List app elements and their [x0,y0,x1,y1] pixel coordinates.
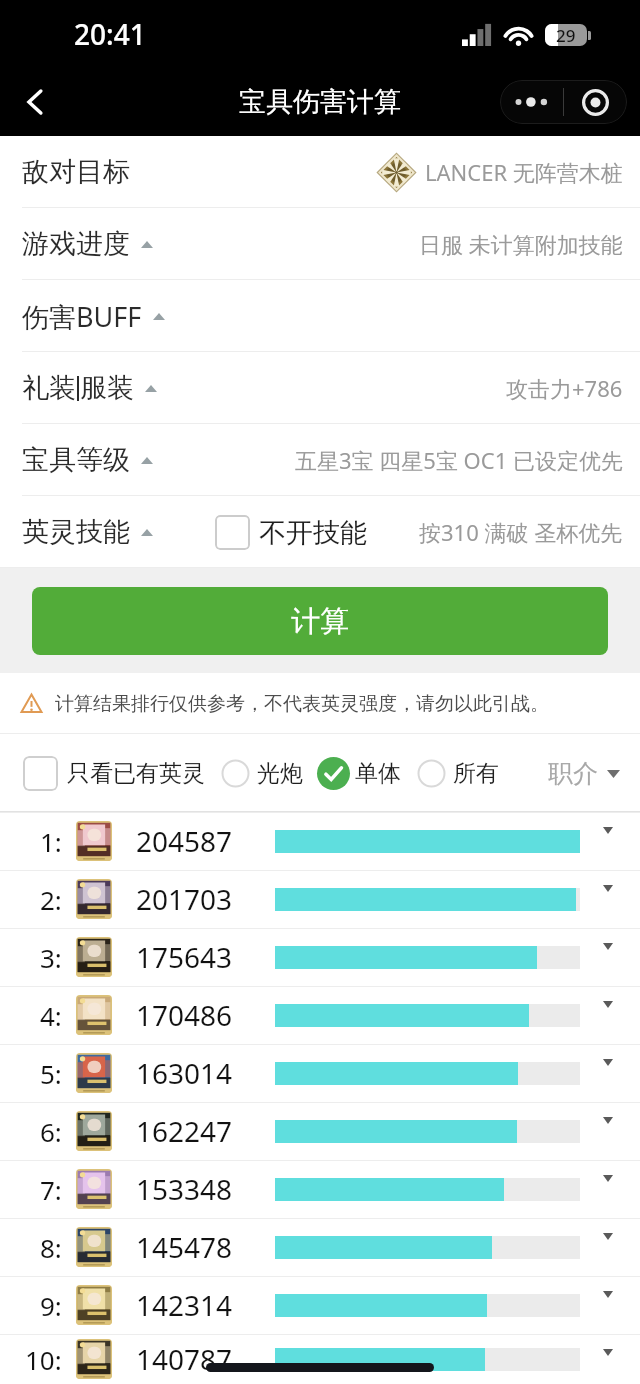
staticText: LANCER 无阵营木桩 [425,157,623,187]
staticText: 计算结果排行仅供参考，不代表英灵强度，请勿以此引战。 [55,692,549,716]
staticText: 2: [40,882,62,917]
staticText: 204587 [136,822,233,860]
staticText: 计算 [291,603,349,640]
staticText: 8: [40,1230,62,1265]
staticText: 宝具等级 [22,443,130,477]
staticText: 服装 [80,371,134,405]
staticText: 145478 [136,1228,233,1266]
staticText: 不开技能 [259,516,367,550]
staticText: 游戏进度 [22,227,130,261]
staticText: 153348 [136,1170,233,1208]
staticText: 光炮 [257,759,303,788]
staticText: 日服 未计算附加技能 [419,229,623,259]
staticText: 170486 [136,996,233,1034]
button[interactable]: Expand details [597,1227,619,1246]
staticText: 3: [40,940,62,975]
staticText: 按310 满破 圣杯优先 [419,517,623,547]
button[interactable]: 2: [0,870,640,928]
button[interactable]: 9: [0,1276,640,1334]
staticText: 29 [556,24,576,46]
staticText: 201703 [136,880,233,918]
button[interactable]: Expand details [597,995,619,1014]
button[interactable]: 5: [0,1044,640,1102]
button[interactable]: Expand details [597,937,619,956]
button[interactable]: 不开技能 [215,515,367,550]
button[interactable]: 只看已有英灵 [23,756,205,791]
button[interactable]: 职介 [548,758,620,789]
staticText: 6: [40,1114,62,1149]
staticText: 敌对目标 [22,155,130,189]
staticText: 攻击力+786 [506,373,623,403]
staticText: 162247 [136,1112,233,1150]
button[interactable]: Expand details [597,1111,619,1130]
staticText: 只看已有英灵 [67,759,205,788]
staticText: 单体 [355,759,401,788]
staticText: 1: [40,824,62,859]
button[interactable]: 3: [0,928,640,986]
staticText: 职介 [548,758,598,789]
button[interactable]: 计算 [32,587,608,655]
button[interactable]: 宝具等级 [0,424,640,496]
staticText: 英灵技能 [22,515,130,549]
staticText: 175643 [136,938,233,976]
staticText: 五星3宝 四星5宝 OC1 已设定优先 [295,445,623,475]
button[interactable]: More [500,80,563,124]
staticText: 10: [25,1342,62,1377]
staticText: 4: [40,998,62,1033]
button[interactable]: Expand details [597,1169,619,1188]
button[interactable]: 7: [0,1160,640,1218]
button[interactable]: 10: [0,1334,640,1384]
staticText: 9: [40,1288,62,1323]
button[interactable]: 礼装 [0,352,640,424]
staticText: 142314 [136,1286,233,1324]
staticText: 伤害BUFF [22,298,142,335]
button[interactable]: 伤害BUFF [0,280,640,352]
button[interactable]: Expand details [597,1343,619,1362]
button[interactable]: Back [8,74,64,130]
staticText: 140787 [136,1340,233,1378]
staticText: 7: [40,1172,62,1207]
button[interactable]: Expand details [597,821,619,840]
staticText: 163014 [136,1054,233,1092]
staticText: 20:41 [74,15,146,53]
button[interactable]: 敌对目标 [0,136,640,208]
button[interactable]: 单体 [317,757,401,790]
button[interactable]: 英灵技能 [0,496,640,568]
staticText: 宝具伤害计算 [239,85,401,119]
button[interactable]: 游戏进度 [0,208,640,280]
staticText: 礼装 [22,371,76,405]
button[interactable]: 所有 [415,757,499,790]
button[interactable]: 8: [0,1218,640,1276]
button[interactable]: 1: [0,812,640,870]
button[interactable]: 6: [0,1102,640,1160]
button[interactable]: Expand details [597,1053,619,1072]
button[interactable]: 4: [0,986,640,1044]
button[interactable]: Close [564,80,627,124]
staticText: 5: [40,1056,62,1091]
button[interactable]: 光炮 [219,757,303,790]
button[interactable]: Expand details [597,1285,619,1304]
staticText: 所有 [453,759,499,788]
button[interactable]: Expand details [597,879,619,898]
